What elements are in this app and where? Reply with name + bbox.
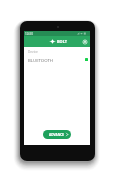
staticText: ADVANCE [49, 133, 65, 137]
button[interactable]: BLUETOOTH [24, 56, 90, 63]
staticText: BOLT [57, 39, 68, 44]
button[interactable]: BOLT [49, 39, 68, 44]
button[interactable]: Account [82, 39, 88, 45]
staticText: 12:30 [25, 32, 33, 36]
staticText: Device [28, 50, 38, 54]
button[interactable]: ADVANCE [43, 130, 71, 139]
staticText: BLUETOOTH [28, 57, 53, 63]
